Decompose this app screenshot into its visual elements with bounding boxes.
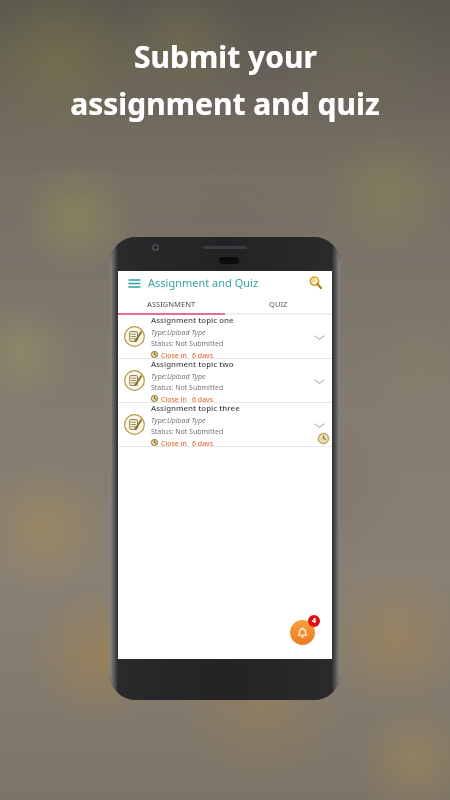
staticText: Upload Type (167, 328, 206, 338)
staticText: 6 days (192, 351, 213, 358)
button[interactable]: Menu (126, 275, 142, 291)
staticText: Close in (161, 351, 187, 358)
staticText: Assignment topic three (151, 403, 240, 414)
staticText: Type: (151, 416, 167, 426)
staticText: Assignment and Quiz (148, 275, 259, 290)
button[interactable]: Assignment topic two (118, 359, 332, 402)
staticText: Type: (151, 372, 167, 382)
staticText: Upload Type (167, 372, 206, 382)
staticText: Close in (161, 395, 187, 402)
button[interactable]: Notifications (290, 620, 315, 645)
staticText: assignment and quiz (70, 83, 380, 124)
staticText: 6 days (192, 395, 213, 402)
staticText: Upload Type (167, 416, 206, 426)
staticText: QUIZ (269, 299, 288, 309)
staticText: Submit your (134, 36, 317, 77)
button[interactable]: Expand (312, 418, 326, 432)
button[interactable]: Search (307, 274, 324, 291)
staticText: Status: Not Submitted (151, 339, 224, 349)
staticText: Status: Not Submitted (151, 427, 224, 437)
staticText: Assignment topic two (151, 359, 234, 370)
staticText: 4 (312, 616, 317, 626)
staticText: 6 days (192, 439, 213, 446)
staticText: Status: Not Submitted (151, 383, 224, 393)
staticText: ASSIGNMENT (147, 299, 196, 309)
button[interactable]: Reminder (317, 432, 330, 445)
staticText: Assignment topic one (151, 315, 234, 326)
staticText: Type: (151, 328, 167, 338)
button[interactable]: ASSIGNMENT (118, 294, 225, 313)
button[interactable]: Expand (312, 330, 326, 344)
button[interactable]: Assignment topic one (118, 315, 332, 358)
button[interactable]: QUIZ (225, 294, 332, 313)
button[interactable]: Assignment topic three (118, 403, 332, 446)
staticText: Close in (161, 439, 187, 446)
button[interactable]: Expand (312, 374, 326, 388)
